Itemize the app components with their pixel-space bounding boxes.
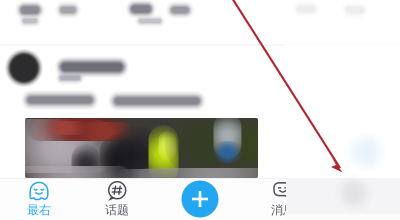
button[interactable]: New post xyxy=(156,178,244,220)
staticText: 我的 xyxy=(349,203,373,217)
button[interactable]: 消息 xyxy=(244,178,322,220)
staticText: 话题 xyxy=(105,203,129,217)
button[interactable]: 话题 xyxy=(78,178,156,220)
button[interactable]: 我的 xyxy=(322,178,400,220)
staticText: 消息 xyxy=(271,203,295,217)
button[interactable]: 最右 xyxy=(0,178,78,220)
staticText: 最右 xyxy=(27,203,51,217)
